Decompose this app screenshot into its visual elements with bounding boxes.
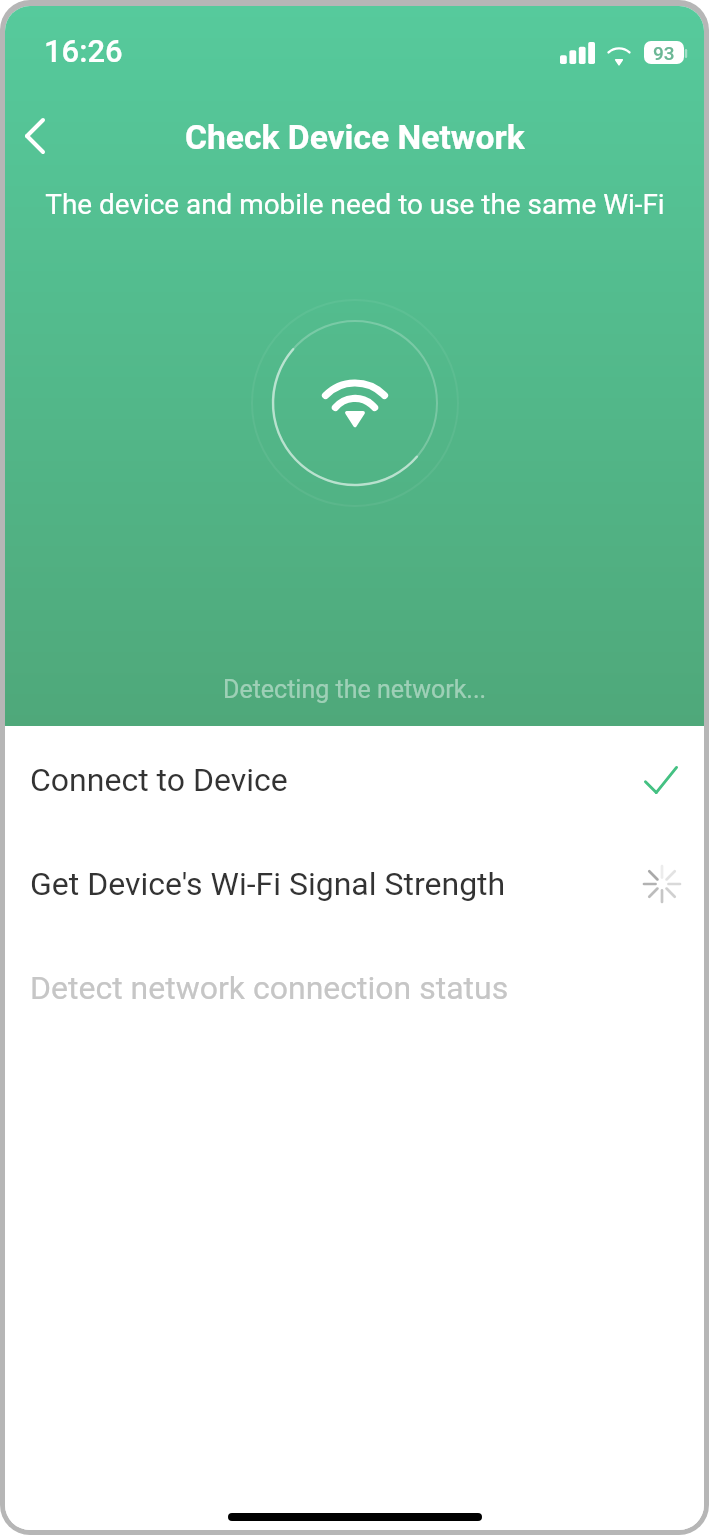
- staticText: Connect to Device: [30, 761, 644, 799]
- staticText: Get Device's Wi-Fi Signal Strength: [30, 865, 640, 903]
- staticText: The device and mobile need to use the sa…: [45, 188, 665, 221]
- staticText: Detecting the network...: [223, 675, 487, 704]
- button[interactable]: Detect network connection status: [5, 936, 704, 1040]
- staticText: 16:26: [44, 33, 123, 69]
- staticText: Check Device Network: [185, 118, 525, 157]
- staticText: 93: [653, 42, 675, 64]
- button[interactable]: Connect to Device: [5, 728, 704, 832]
- button[interactable]: Back: [5, 92, 79, 180]
- staticText: Detect network connection status: [30, 969, 678, 1007]
- button[interactable]: Get Device's Wi-Fi Signal Strength: [5, 832, 704, 936]
